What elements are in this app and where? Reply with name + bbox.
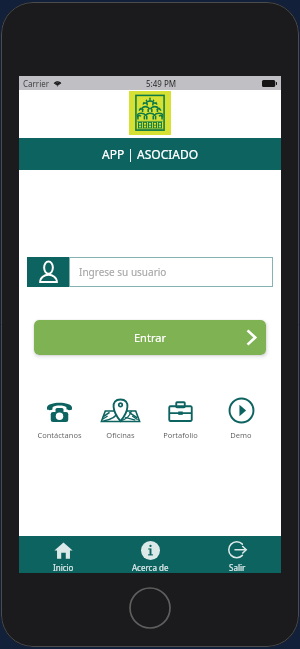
staticText: Salir <box>229 562 246 573</box>
staticText: Ingrese su usuario <box>79 265 167 279</box>
staticText: Portafolio <box>163 430 198 440</box>
staticText: Carrier <box>23 78 50 89</box>
button[interactable]: Acerca de <box>107 536 194 573</box>
button[interactable]: Portafolio <box>150 399 210 440</box>
button[interactable]: Entrar <box>34 320 266 355</box>
button[interactable]: Contáctanos <box>29 399 89 440</box>
staticText: APP | ASOCIADO <box>102 146 199 162</box>
button[interactable]: Salir <box>194 536 281 573</box>
staticText: Contáctanos <box>37 430 82 440</box>
staticText: 5:49 PM <box>146 78 177 89</box>
staticText: Inicio <box>53 562 74 573</box>
button[interactable]: Oficinas <box>90 399 150 440</box>
button[interactable]: Ingrese su usuario <box>79 257 273 287</box>
staticText: Acerca de <box>132 562 169 573</box>
button[interactable]: Demo <box>211 399 271 440</box>
staticText: Oficinas <box>106 430 135 440</box>
staticText: Demo <box>230 430 252 440</box>
other: Usuario <box>27 257 69 287</box>
staticText: Entrar <box>134 330 166 345</box>
button[interactable]: Inicio <box>19 536 107 573</box>
